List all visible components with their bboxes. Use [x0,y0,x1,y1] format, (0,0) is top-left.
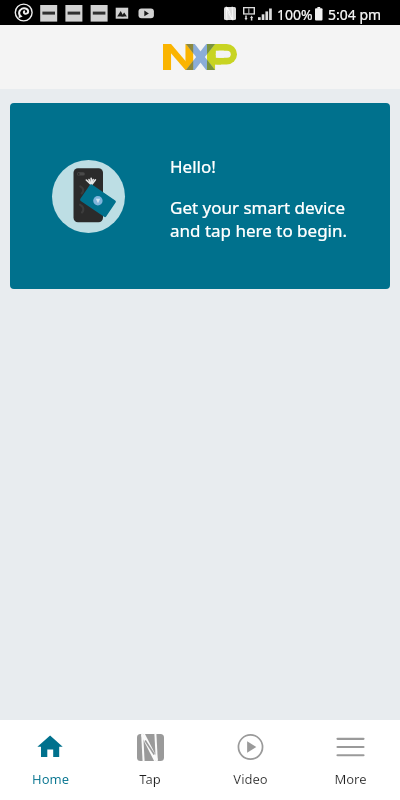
staticText: More [334,770,367,788]
staticText: 5:04 pm [328,5,382,24]
button[interactable]: Tap [100,720,200,800]
button[interactable]: More [300,720,400,800]
staticText: Hello! [170,155,216,178]
button[interactable]: Home [0,720,100,800]
staticText: Get your smart device and tap here to be… [170,196,348,242]
button[interactable]: Video [200,720,300,800]
staticText: 100% [277,5,313,24]
staticText: Video [233,770,268,788]
button[interactable]: Hello! [10,103,390,289]
staticText: Home [32,770,69,788]
staticText: Tap [139,770,161,788]
